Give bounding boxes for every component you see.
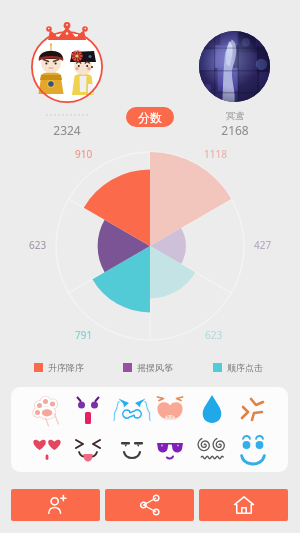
staticText: 摇摆风筝: [137, 362, 173, 373]
staticText: 623: [29, 238, 47, 252]
staticText: 冥鸢: [226, 110, 244, 121]
staticText: 791: [75, 328, 93, 342]
button[interactable]: 分数: [126, 107, 174, 127]
staticText: 分数: [138, 110, 162, 125]
button[interactable]: Home: [199, 489, 288, 521]
button[interactable]: Winner team avatar: [21, 12, 113, 106]
staticText: 427: [254, 238, 272, 252]
button[interactable]: Opponent avatar: [199, 31, 270, 102]
staticText: 顺序点击: [227, 362, 263, 373]
button[interactable]: 升序降序: [30, 358, 92, 376]
staticText: 升序降序: [48, 362, 84, 373]
staticText: 1118: [204, 147, 227, 161]
button[interactable]: 摇摆风筝: [119, 358, 181, 376]
staticText: 910: [75, 147, 93, 161]
staticText: 623: [205, 328, 223, 342]
button[interactable]: Add friend: [11, 489, 100, 521]
button[interactable]: Share: [105, 489, 194, 521]
staticText: 2324: [53, 122, 81, 138]
staticText: 2168: [221, 122, 249, 138]
button[interactable]: 顺序点击: [209, 358, 271, 376]
